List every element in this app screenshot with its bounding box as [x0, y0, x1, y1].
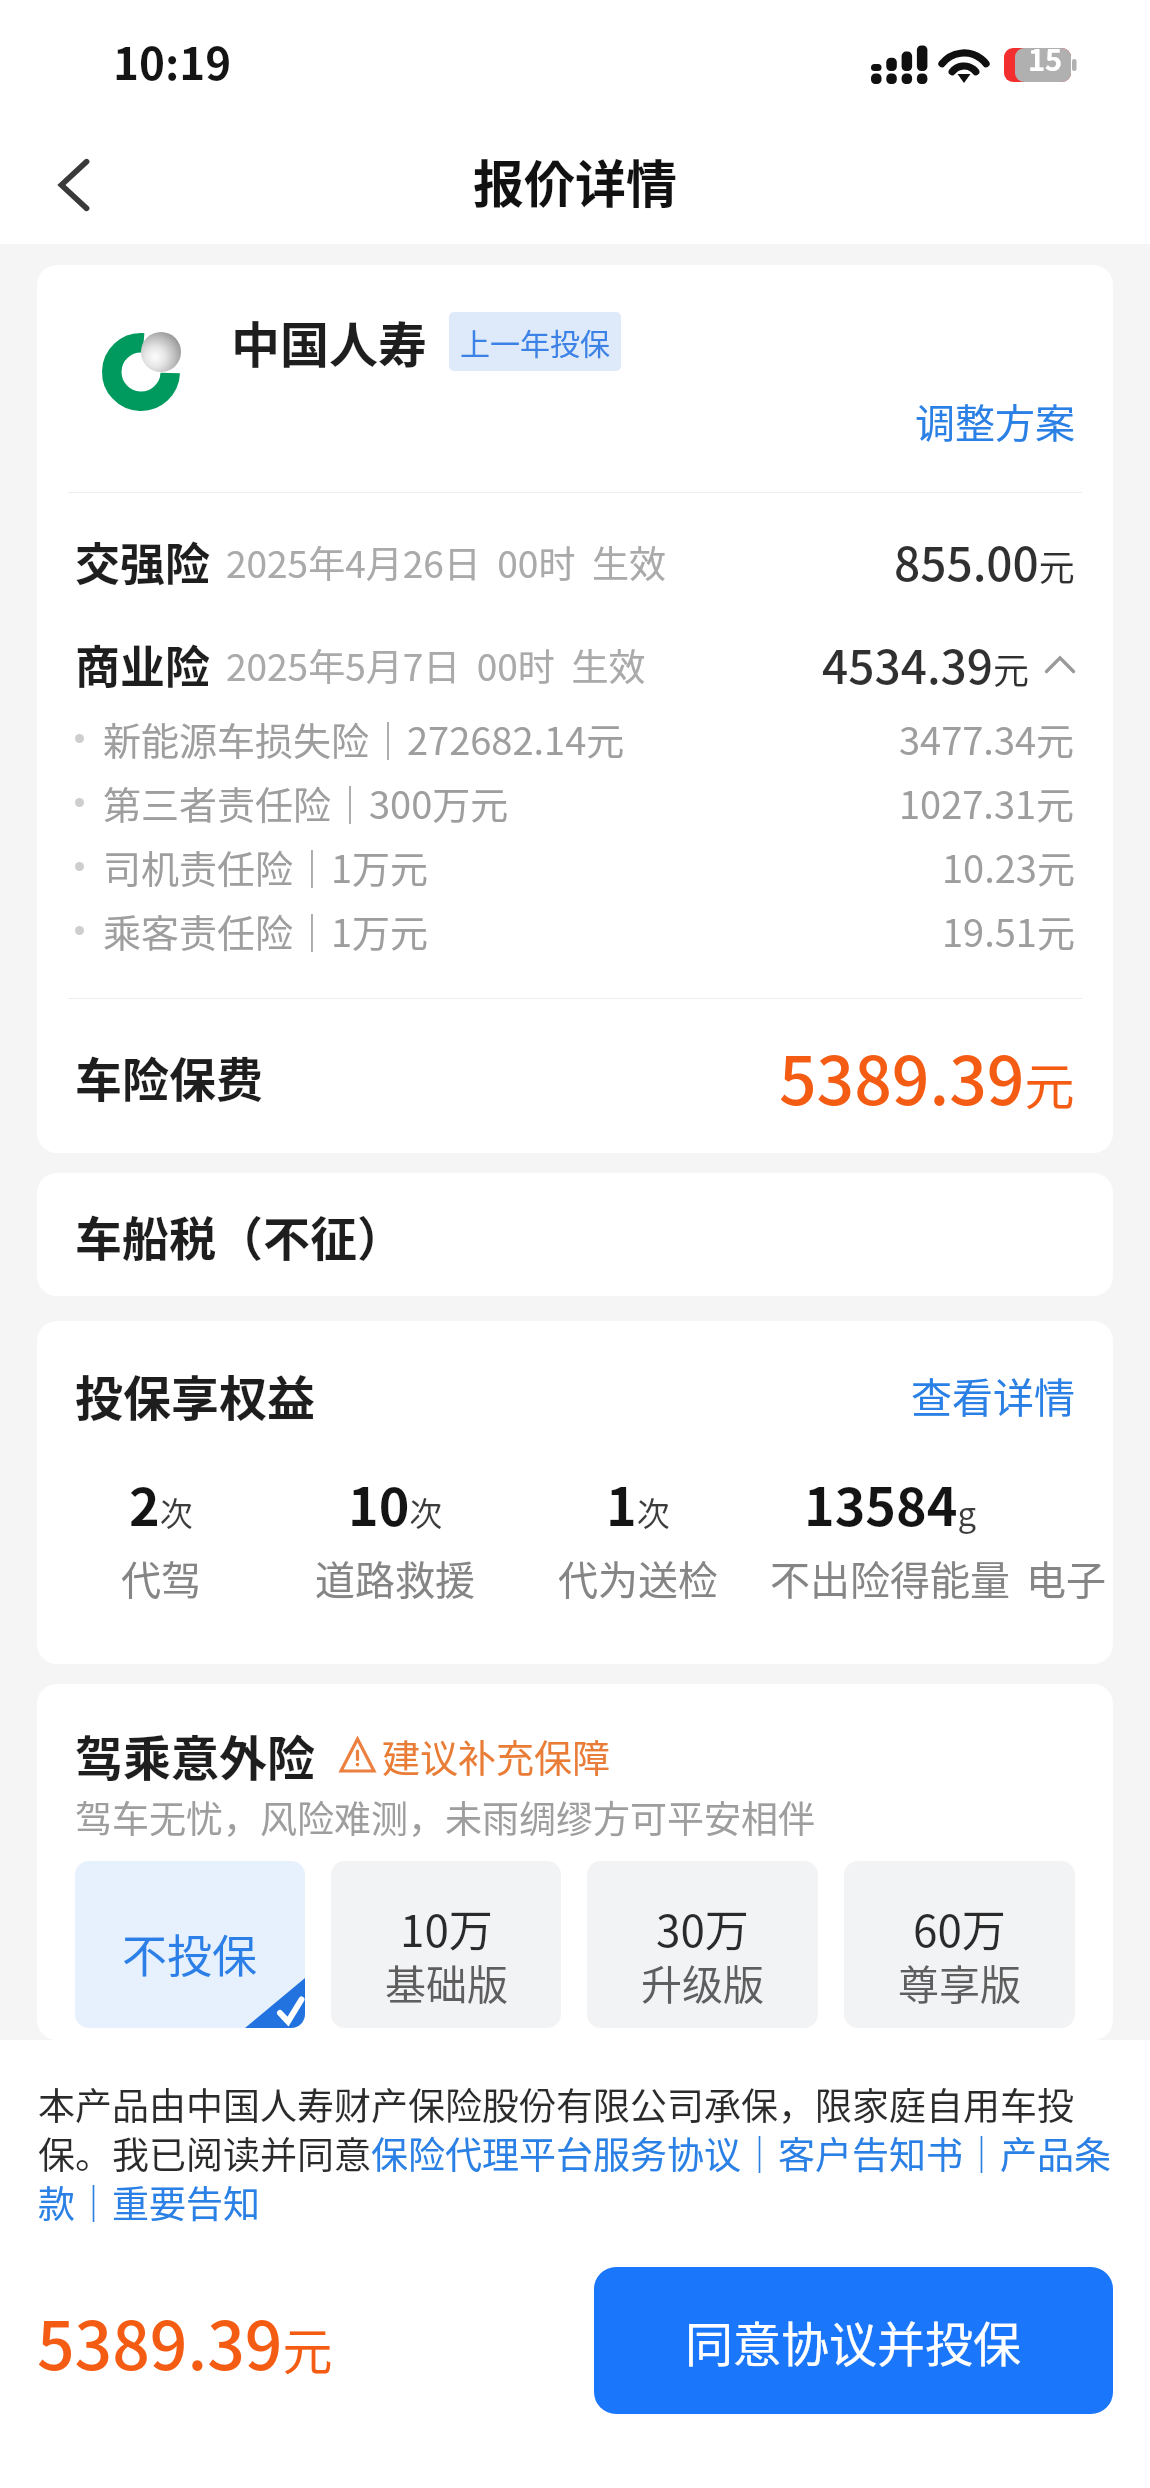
staticText: 中国人寿: [231, 306, 428, 377]
staticText: 855.00元: [894, 528, 1075, 595]
staticText: 电子保单: [1026, 1549, 1113, 1607]
staticText: 5389.39元: [779, 1028, 1075, 1124]
staticText: 第三者责任险｜300万元: [103, 775, 509, 830]
button[interactable]: Back: [24, 135, 124, 235]
staticText: 投保享权益: [75, 1360, 316, 1430]
staticText: 代为送检: [558, 1549, 718, 1607]
staticText: 10次: [348, 1466, 443, 1541]
staticText: 2次: [129, 1466, 193, 1541]
staticText: 调整方案: [915, 392, 1075, 450]
staticText: 13584g: [804, 1466, 977, 1541]
button[interactable]: 调整方案: [903, 380, 1087, 462]
staticText: 2025年5月7日 00时 生效: [226, 638, 646, 692]
staticText: 交强险: [75, 529, 211, 594]
staticText: 10.23元: [942, 839, 1075, 894]
staticText: 车船税（不征）: [75, 1201, 404, 1269]
button[interactable]: 商业险: [75, 631, 1075, 698]
staticText: 10万: [400, 1896, 493, 1960]
button[interactable]: 30万: [587, 1861, 818, 2028]
staticText: 上一年投保: [460, 320, 610, 363]
staticText: 乘客责任险｜1万元: [103, 903, 429, 958]
button[interactable]: 查看详情: [899, 1355, 1087, 1434]
staticText: 尊享版: [898, 1952, 1021, 2011]
staticText: 道路救援: [315, 1549, 475, 1607]
staticText: 15: [1028, 37, 1063, 79]
staticText: 30万: [656, 1896, 749, 1960]
button[interactable]: 交强险: [75, 528, 1075, 595]
button[interactable]: 不投保: [75, 1861, 305, 2028]
staticText: 查看详情: [911, 1365, 1075, 1424]
staticText: 1027.31元: [899, 775, 1075, 830]
staticText: 报价详情: [473, 144, 678, 218]
button[interactable]: 60万: [844, 1861, 1075, 2028]
staticText: 基础版: [385, 1952, 508, 2011]
staticText: 升级版: [641, 1952, 764, 2011]
button[interactable]: 10万: [331, 1861, 561, 2028]
staticText: 新能源车损失险｜272682.14元: [103, 711, 625, 766]
staticText: 代驾: [121, 1549, 201, 1607]
staticText: 2025年4月26日 00时 生效: [226, 535, 666, 589]
staticText: 不出险得能量: [770, 1549, 1010, 1607]
staticText: 建议补充保障: [382, 1728, 611, 1783]
staticText: 4534.39元: [822, 631, 1030, 698]
staticText: 5389.39元: [37, 2293, 333, 2389]
staticText: 车险保费: [75, 1042, 263, 1110]
staticText: 60万: [913, 1896, 1006, 1960]
staticText: 1次: [606, 1466, 670, 1541]
staticText: 3477.34元: [899, 711, 1075, 766]
staticText: 本产品由中国人寿财产保险股份有限公司承保，限家庭自用车投保。我已阅读并同意保险代…: [38, 2077, 1114, 2229]
staticText: 驾乘意外险: [75, 1720, 316, 1790]
button[interactable]: 同意协议并投保: [594, 2267, 1113, 2414]
staticText: 商业险: [75, 632, 211, 697]
staticText: 驾车无忧，风险难测，未雨绸缪方可平安相伴: [75, 1790, 815, 1844]
staticText: 同意协议并投保: [685, 2306, 1022, 2376]
staticText: 10:19: [113, 29, 232, 93]
staticText: 不投保: [122, 1921, 258, 1986]
staticText: 19.51元: [942, 903, 1075, 958]
staticText: 司机责任险｜1万元: [103, 839, 429, 894]
